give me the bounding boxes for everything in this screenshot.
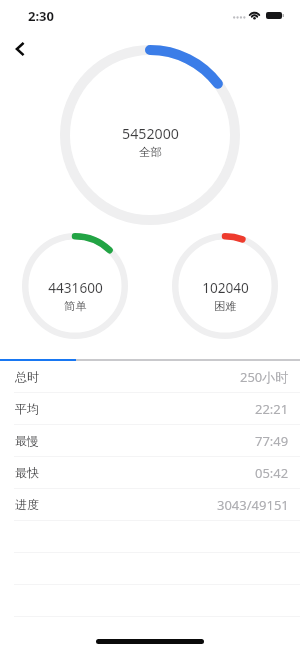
button[interactable]: 进度: [0, 489, 300, 520]
button[interactable]: 平均: [0, 393, 300, 424]
staticText: 全部: [139, 145, 162, 159]
staticText: 最快: [15, 465, 39, 480]
button[interactable]: 最快: [0, 457, 300, 488]
staticText: 4431600: [48, 278, 103, 297]
button[interactable]: Back: [3, 32, 37, 66]
staticText: 最慢: [15, 433, 39, 448]
staticText: 平均: [15, 401, 39, 416]
staticText: 5452000: [122, 124, 179, 143]
staticText: 77:49: [255, 432, 289, 450]
staticText: 简单: [64, 299, 87, 313]
button[interactable]: 总时: [0, 361, 300, 392]
button[interactable]: 困难: [172, 233, 278, 339]
staticText: 3043/49151: [217, 496, 289, 514]
staticText: 22:21: [255, 400, 289, 418]
staticText: 05:42: [255, 464, 289, 482]
staticText: 进度: [15, 497, 39, 512]
staticText: 102040: [202, 278, 249, 297]
button[interactable]: 简单: [22, 233, 128, 339]
button[interactable]: 全部: [60, 45, 240, 225]
staticText: 困难: [214, 299, 237, 313]
staticText: 2:30: [28, 7, 54, 25]
staticText: 250小时: [240, 368, 289, 386]
button[interactable]: 最慢: [0, 425, 300, 456]
staticText: 总时: [15, 369, 39, 384]
